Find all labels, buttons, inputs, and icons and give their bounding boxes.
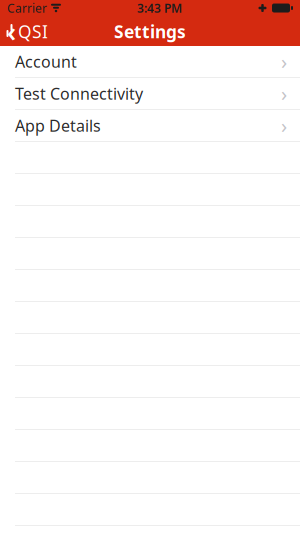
button[interactable]: Account: [0, 46, 300, 78]
staticText: 3:43 PM: [137, 0, 182, 16]
button[interactable]: App Details: [0, 110, 300, 142]
staticText: QSI: [18, 20, 48, 43]
staticText: ›: [281, 112, 287, 139]
staticText: Carrier: [7, 0, 47, 16]
staticText: ›: [281, 48, 287, 75]
staticText: ‹: [7, 14, 16, 49]
staticText: Settings: [114, 20, 186, 43]
staticText: Test Connectivity: [15, 83, 143, 104]
staticText: ›: [281, 80, 287, 107]
button[interactable]: ‹: [0, 15, 56, 48]
staticText: App Details: [15, 115, 101, 136]
staticText: Account: [15, 51, 77, 72]
button[interactable]: Test Connectivity: [0, 78, 300, 110]
